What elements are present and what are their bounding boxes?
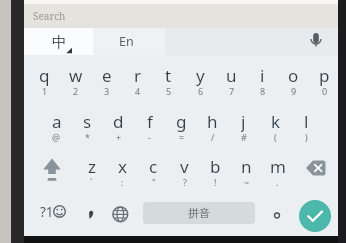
button[interactable] bbox=[93, 28, 165, 55]
staticText: * bbox=[85, 131, 90, 143]
staticText: p bbox=[319, 64, 330, 86]
staticText: # bbox=[241, 131, 247, 143]
button[interactable]: ?1 bbox=[32, 200, 62, 224]
staticText: d bbox=[113, 110, 124, 132]
staticText: 3 bbox=[104, 85, 110, 97]
staticText: z bbox=[88, 155, 96, 177]
staticText: r bbox=[134, 64, 142, 86]
button[interactable] bbox=[299, 200, 331, 232]
staticText: a bbox=[52, 110, 62, 132]
staticText: ? bbox=[183, 176, 187, 188]
button[interactable] bbox=[76, 196, 106, 232]
staticText: @ bbox=[52, 131, 61, 143]
button[interactable]: z bbox=[76, 146, 107, 191]
button[interactable]: r bbox=[122, 55, 153, 100]
staticText: ) bbox=[305, 131, 308, 143]
staticText: ~ bbox=[244, 176, 250, 188]
staticText: 6 bbox=[198, 85, 204, 97]
staticText: c bbox=[149, 155, 158, 177]
button[interactable] bbox=[0, 4, 346, 28]
staticText: j bbox=[241, 110, 246, 132]
button[interactable]: g bbox=[166, 101, 197, 146]
staticText: h bbox=[207, 110, 218, 132]
button[interactable]: w bbox=[60, 55, 91, 100]
staticText: ` bbox=[90, 176, 93, 188]
staticText: f bbox=[147, 110, 153, 132]
button[interactable]: p bbox=[309, 55, 340, 100]
staticText: k bbox=[271, 110, 281, 132]
staticText: : bbox=[121, 176, 124, 188]
button[interactable]: n bbox=[231, 146, 262, 191]
button[interactable]: o bbox=[278, 55, 309, 100]
staticText: Search bbox=[33, 9, 66, 23]
button[interactable]: j bbox=[228, 101, 259, 146]
button[interactable]: q bbox=[29, 55, 60, 100]
staticText: = bbox=[179, 131, 185, 143]
staticText: ?1 bbox=[40, 203, 54, 221]
button[interactable]: i bbox=[247, 55, 278, 100]
button[interactable]: u bbox=[216, 55, 247, 100]
staticText: o bbox=[288, 64, 299, 86]
staticText: / bbox=[211, 131, 215, 143]
button[interactable]: y bbox=[185, 55, 216, 100]
button[interactable]: 拼音 bbox=[143, 202, 255, 224]
staticText: 7 bbox=[229, 85, 235, 97]
staticText: ( bbox=[274, 131, 277, 143]
staticText: 1 bbox=[42, 85, 48, 97]
button[interactable]: d bbox=[103, 101, 134, 146]
button[interactable]: f bbox=[134, 101, 165, 146]
staticText: y bbox=[196, 64, 205, 86]
staticText: 5 bbox=[166, 85, 172, 97]
staticText: n bbox=[241, 155, 252, 177]
staticText: w bbox=[69, 64, 83, 86]
button[interactable]: c bbox=[138, 146, 169, 191]
staticText: b bbox=[210, 155, 221, 177]
staticText: ! bbox=[214, 176, 217, 188]
staticText: t bbox=[165, 64, 172, 86]
staticText: q bbox=[39, 64, 50, 86]
button[interactable]: b bbox=[200, 146, 231, 191]
button[interactable]: x bbox=[107, 146, 138, 191]
staticText: l bbox=[304, 110, 309, 132]
button[interactable] bbox=[24, 28, 93, 55]
button[interactable]: v bbox=[169, 146, 200, 191]
staticText: En bbox=[119, 33, 134, 50]
staticText: e bbox=[102, 64, 112, 86]
button[interactable]: h bbox=[197, 101, 228, 146]
staticText: x bbox=[118, 155, 127, 177]
staticText: 中 bbox=[52, 33, 67, 52]
button[interactable] bbox=[294, 146, 338, 191]
button[interactable]: a bbox=[41, 101, 72, 146]
button[interactable]: t bbox=[153, 55, 184, 100]
button[interactable] bbox=[28, 146, 73, 191]
staticText: + bbox=[116, 131, 122, 143]
button[interactable]: e bbox=[91, 55, 122, 100]
staticText: 0 bbox=[322, 85, 328, 97]
button[interactable] bbox=[106, 196, 134, 232]
staticText: . bbox=[276, 176, 279, 188]
staticText: 2 bbox=[73, 85, 79, 97]
staticText: " bbox=[152, 176, 156, 188]
button[interactable]: m bbox=[262, 146, 293, 191]
staticText: u bbox=[226, 64, 237, 86]
staticText: 9 bbox=[291, 85, 297, 97]
staticText: 8 bbox=[260, 85, 266, 97]
button[interactable]: k bbox=[260, 101, 291, 146]
staticText: v bbox=[180, 155, 189, 177]
staticText: 4 bbox=[135, 85, 141, 97]
staticText: s bbox=[83, 110, 92, 132]
staticText: i bbox=[260, 64, 265, 86]
staticText: m bbox=[270, 155, 286, 177]
button[interactable]: l bbox=[291, 101, 322, 146]
staticText: 拼音 bbox=[188, 206, 210, 220]
staticText: - bbox=[148, 131, 151, 143]
button[interactable]: s bbox=[72, 101, 103, 146]
staticText: g bbox=[176, 110, 187, 132]
